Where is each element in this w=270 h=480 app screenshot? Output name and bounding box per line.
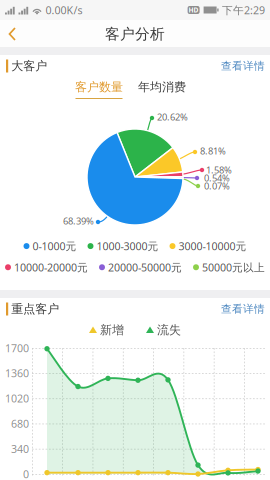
staticText: 0 (23, 467, 29, 480)
staticText: 查看详情 (221, 59, 265, 72)
staticText: 0.07% (204, 180, 230, 192)
staticText: 0.54% (204, 172, 230, 184)
staticText: 下午2:29 (222, 3, 265, 17)
staticText: 680 (11, 416, 29, 431)
staticText: HD (189, 6, 199, 14)
staticText: 1020 (5, 391, 29, 405)
staticText: 新增 (100, 323, 124, 337)
staticText: 3000-10000元 (178, 239, 246, 253)
staticText: 340 (11, 442, 29, 456)
staticText: 1.58% (206, 164, 232, 176)
staticText: 8.81% (200, 145, 226, 157)
staticText: 流失 (157, 323, 181, 337)
staticText: 重点客户 (11, 302, 59, 316)
staticText: 1360 (5, 366, 29, 380)
staticText: 20000-50000元 (108, 260, 182, 274)
staticText: 10000-20000元 (14, 260, 88, 274)
button[interactable]: 客户数量 (0, 77, 125, 103)
button[interactable]: 年均消费 (0, 77, 188, 103)
staticText: 0.00K/s (45, 3, 82, 17)
staticText: 20.62% (157, 111, 188, 123)
button[interactable]: 查看详情 (211, 297, 265, 320)
staticText: 1700 (5, 341, 29, 355)
button[interactable]: 查看详情 (211, 54, 265, 77)
staticText: 客户数量 (75, 80, 123, 94)
staticText: 1000-3000元 (96, 239, 158, 253)
staticText: 客户分析 (105, 25, 165, 43)
staticText: 68.39% (63, 215, 94, 227)
staticText: 50000元以上 (202, 260, 265, 274)
staticText: 0-1000元 (32, 239, 76, 253)
button[interactable]: Back (0, 20, 28, 48)
staticText: 查看详情 (221, 302, 265, 315)
staticText: 年均消费 (138, 80, 186, 94)
staticText: 大客户 (11, 59, 47, 73)
